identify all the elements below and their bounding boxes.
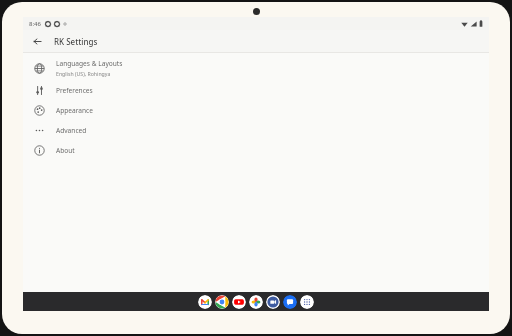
- button[interactable]: Advanced: [23, 120, 489, 140]
- staticText: Preferences: [56, 86, 93, 95]
- staticText: 8:46: [29, 20, 41, 28]
- button[interactable]: Photos: [249, 295, 263, 309]
- button[interactable]: Chrome: [215, 295, 229, 309]
- staticText: English (US), Rohingya: [56, 70, 111, 77]
- staticText: RK Settings: [54, 36, 98, 47]
- staticText: Languages & Layouts: [56, 59, 123, 68]
- button[interactable]: About: [23, 140, 489, 160]
- button[interactable]: Languages & Layouts: [23, 56, 489, 80]
- button[interactable]: All apps: [300, 295, 314, 309]
- button[interactable]: Messages: [283, 295, 297, 309]
- button[interactable]: Back: [28, 32, 46, 50]
- button[interactable]: YouTube: [232, 295, 246, 309]
- button[interactable]: Gmail: [198, 295, 212, 309]
- staticText: Advanced: [56, 126, 87, 135]
- staticText: About: [56, 146, 75, 155]
- button[interactable]: Appearance: [23, 100, 489, 120]
- button[interactable]: Meet: [266, 295, 280, 309]
- staticText: Appearance: [56, 106, 93, 115]
- button[interactable]: Preferences: [23, 80, 489, 100]
